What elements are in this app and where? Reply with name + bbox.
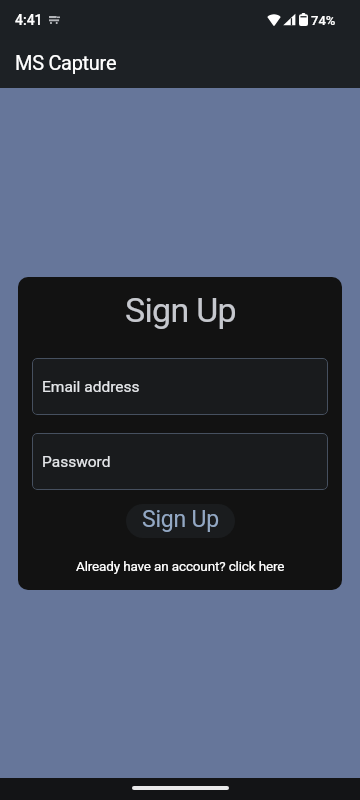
staticText: MS Capture bbox=[15, 51, 117, 74]
staticText: Password bbox=[42, 453, 111, 471]
other: Notification bbox=[49, 16, 60, 24]
button[interactable]: Email address bbox=[32, 358, 328, 415]
button[interactable]: Password bbox=[32, 433, 328, 490]
staticText: Sign Up bbox=[142, 506, 219, 533]
staticText: 4:41 bbox=[15, 12, 43, 28]
other: Battery 74 percent bbox=[299, 13, 308, 26]
staticText: Email address bbox=[42, 378, 140, 396]
button[interactable]: Sign Up bbox=[126, 504, 235, 538]
button[interactable]: Already have an account? click here bbox=[72, 558, 289, 574]
staticText: 74% bbox=[311, 13, 336, 28]
other: Wi-Fi bbox=[267, 13, 281, 26]
other: Mobile signal bbox=[283, 13, 296, 26]
staticText: Sign Up bbox=[125, 290, 236, 330]
